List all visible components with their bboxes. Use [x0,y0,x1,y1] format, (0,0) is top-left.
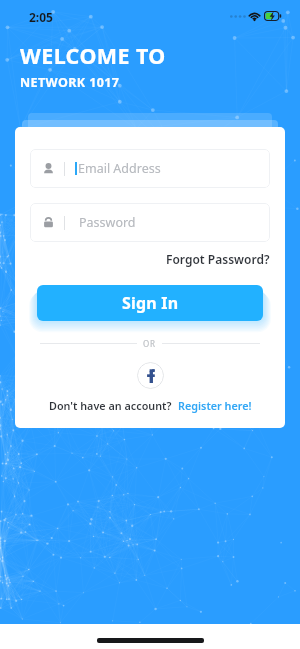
staticText: Email Address [78,160,161,177]
button[interactable]: Register here! [178,398,252,413]
staticText: Password [79,214,136,231]
button[interactable]: Sign In [37,285,263,321]
staticText: Don't have an account? [49,398,172,413]
staticText: WELCOME TO [20,41,166,70]
staticText: Sign In [122,292,179,314]
button[interactable]: Password [30,203,270,242]
button[interactable]: Sign in with Facebook [137,362,164,389]
staticText: NETWORK 1017 [20,74,120,91]
button[interactable]: Forgot Password? [166,251,270,267]
staticText: 2:05 [29,9,53,25]
button[interactable]: Email Address [30,149,270,188]
staticText: OR [143,338,156,349]
